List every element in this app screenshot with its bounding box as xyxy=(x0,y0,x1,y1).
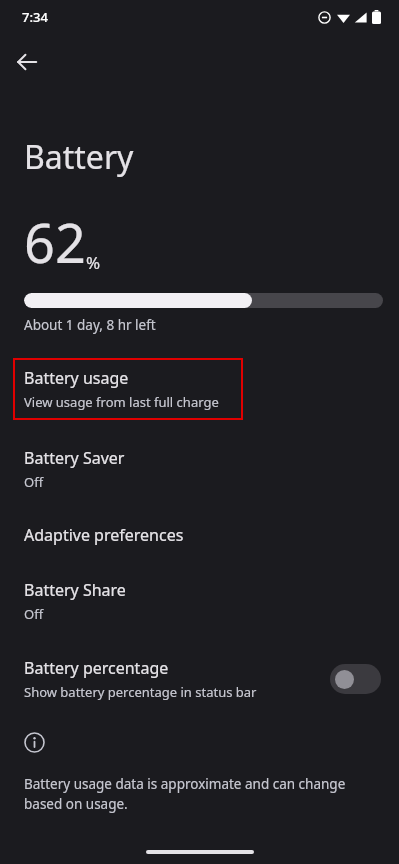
staticText: 62 xyxy=(24,205,86,279)
button[interactable]: Battery usage xyxy=(13,358,243,420)
button[interactable]: Battery percentage xyxy=(0,651,399,707)
staticText: Battery percentage xyxy=(24,657,169,679)
staticText: Battery Share xyxy=(24,579,126,601)
button[interactable]: Battery Saver xyxy=(0,447,399,491)
button[interactable]: Adaptive preferences xyxy=(0,524,399,546)
button[interactable]: Battery Share xyxy=(0,579,399,623)
button[interactable]: Back xyxy=(7,42,47,82)
staticText: Battery xyxy=(24,135,134,179)
staticText: 7:34 xyxy=(22,8,48,26)
staticText: Battery usage xyxy=(24,367,129,389)
staticText: Show battery percentage in status bar xyxy=(24,683,257,701)
staticText: Off xyxy=(24,605,44,623)
button[interactable]: Battery percentage toggle xyxy=(330,664,381,694)
staticText: Off xyxy=(24,473,44,491)
staticText: % xyxy=(86,251,101,274)
staticText: Battery usage data is approximate and ca… xyxy=(24,775,381,813)
staticText: About 1 day, 8 hr left xyxy=(24,316,156,334)
staticText: Battery Saver xyxy=(24,447,125,469)
staticText: Adaptive preferences xyxy=(24,524,184,546)
staticText: View usage from last full charge xyxy=(24,393,219,411)
